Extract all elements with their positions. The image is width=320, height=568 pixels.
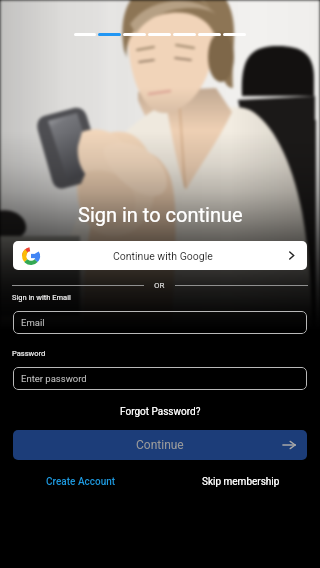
button[interactable]: Continue with Google bbox=[13, 241, 307, 270]
staticText: Password bbox=[12, 349, 46, 358]
staticText: Continue with Google bbox=[113, 250, 213, 262]
button[interactable]: Create Account bbox=[46, 476, 116, 488]
other: Step 7 bbox=[223, 33, 246, 36]
other: Step 6 bbox=[198, 33, 221, 36]
button[interactable]: Enter password bbox=[13, 367, 307, 390]
staticText: Sign in with Email bbox=[12, 293, 71, 302]
button[interactable]: Forgot Password? bbox=[120, 406, 201, 418]
other: Continue bbox=[282, 438, 296, 452]
other: Step 2 bbox=[98, 33, 121, 36]
other: Continue with Google bbox=[286, 250, 297, 261]
staticText: OR bbox=[154, 281, 165, 290]
other: Step 1 bbox=[74, 33, 96, 36]
other: Step 5 bbox=[173, 33, 196, 36]
staticText: Email bbox=[21, 317, 45, 328]
button[interactable]: Skip membership bbox=[202, 476, 280, 488]
other: Step 3 bbox=[123, 33, 146, 36]
staticText: Sign in to continue bbox=[78, 203, 243, 226]
button[interactable]: Continue bbox=[13, 430, 307, 460]
other: Step 4 bbox=[148, 33, 171, 36]
button[interactable]: Email bbox=[13, 311, 307, 334]
staticText: Continue bbox=[136, 438, 184, 452]
staticText: Enter password bbox=[21, 373, 87, 384]
